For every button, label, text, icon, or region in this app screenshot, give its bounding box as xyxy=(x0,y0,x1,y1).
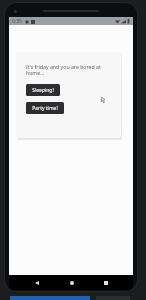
button[interactable]: Sleeping! xyxy=(26,84,60,96)
button[interactable]: Home xyxy=(66,277,77,288)
staticText: It's friday and you are bored at home... xyxy=(26,63,110,77)
button[interactable]: Recent apps xyxy=(100,277,111,288)
staticText: 6:35 xyxy=(12,18,22,25)
button[interactable]: Party time! xyxy=(26,102,64,114)
button[interactable]: Back xyxy=(31,277,42,288)
staticText: Sleeping! xyxy=(32,87,54,94)
staticText: Party time! xyxy=(32,105,58,112)
